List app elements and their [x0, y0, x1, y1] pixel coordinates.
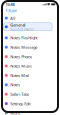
- button[interactable]: All: [4, 13, 52, 23]
- button[interactable]: Notes Flashlight: [4, 33, 52, 42]
- button[interactable]: Notes Photos: [4, 52, 52, 61]
- staticText: Settings Edit: [10, 101, 30, 106]
- button[interactable]: Safari Tabs: [4, 89, 52, 99]
- staticText: Notes Music: [10, 63, 32, 69]
- staticText: 15:44: [6, 1, 15, 7]
- button[interactable]: Apps: [4, 7, 34, 13]
- staticText: More: [10, 110, 20, 115]
- staticText: Safari Tabs: [10, 91, 29, 97]
- staticText: Notes: [10, 82, 20, 87]
- staticText: Notes Flashlight: [10, 35, 37, 40]
- staticText: All: [10, 15, 15, 21]
- staticText: Notes Message: [10, 44, 37, 50]
- staticText: Sounds & Haptics: [10, 28, 33, 31]
- button[interactable]: More: [4, 108, 52, 115]
- staticText: Notes Photos: [10, 54, 32, 59]
- button[interactable]: Notes Music: [4, 61, 52, 71]
- button[interactable]: Notes Mail: [4, 71, 52, 80]
- button[interactable]: Notes: [4, 80, 52, 89]
- staticText: Apps: [8, 7, 17, 13]
- button[interactable]: Settings Edit: [4, 99, 52, 108]
- button[interactable]: General: [4, 23, 52, 31]
- staticText: Notes Mail: [10, 73, 29, 78]
- button[interactable]: Notes Message: [4, 42, 52, 52]
- staticText: General: [10, 22, 25, 28]
